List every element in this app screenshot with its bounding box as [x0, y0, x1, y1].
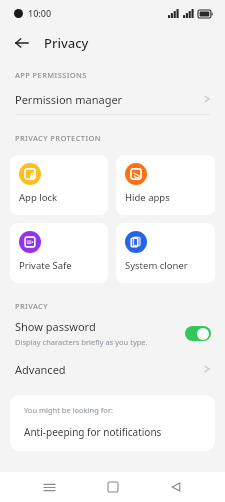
staticText: APP PERMISSIONS — [15, 70, 87, 80]
staticText: Show password — [15, 319, 96, 334]
button[interactable]: Show password — [0, 315, 225, 355]
staticText: Privacy — [44, 34, 89, 52]
button[interactable]: System cloner — [116, 223, 215, 283]
button[interactable]: Back — [161, 472, 191, 502]
button[interactable]: App lock — [10, 155, 108, 215]
staticText: PRIVACY — [15, 301, 48, 311]
staticText: System cloner — [125, 259, 188, 272]
button[interactable]: Hide apps — [116, 155, 215, 215]
staticText: You might be looking for: — [24, 405, 114, 415]
staticText: 10:00 — [28, 7, 52, 19]
button[interactable]: Home — [98, 472, 128, 502]
button[interactable]: Anti-peeping for notifications — [24, 425, 201, 439]
staticText: Advanced — [15, 362, 66, 377]
staticText: App lock — [19, 191, 58, 204]
button[interactable]: Permission manager — [0, 84, 225, 114]
button[interactable]: Private Safe — [10, 223, 108, 283]
staticText: Permission manager — [15, 92, 123, 107]
staticText: Display characters briefly as you type. — [15, 337, 148, 347]
staticText: Hide apps — [125, 191, 170, 204]
button[interactable]: Back — [8, 29, 36, 57]
button[interactable]: Advanced — [0, 355, 225, 383]
staticText: Private Safe — [19, 259, 72, 272]
button[interactable]: Show password toggle — [185, 326, 211, 341]
staticText: PRIVACY PROTECTION — [15, 133, 102, 143]
button[interactable]: Recent apps — [34, 472, 64, 502]
